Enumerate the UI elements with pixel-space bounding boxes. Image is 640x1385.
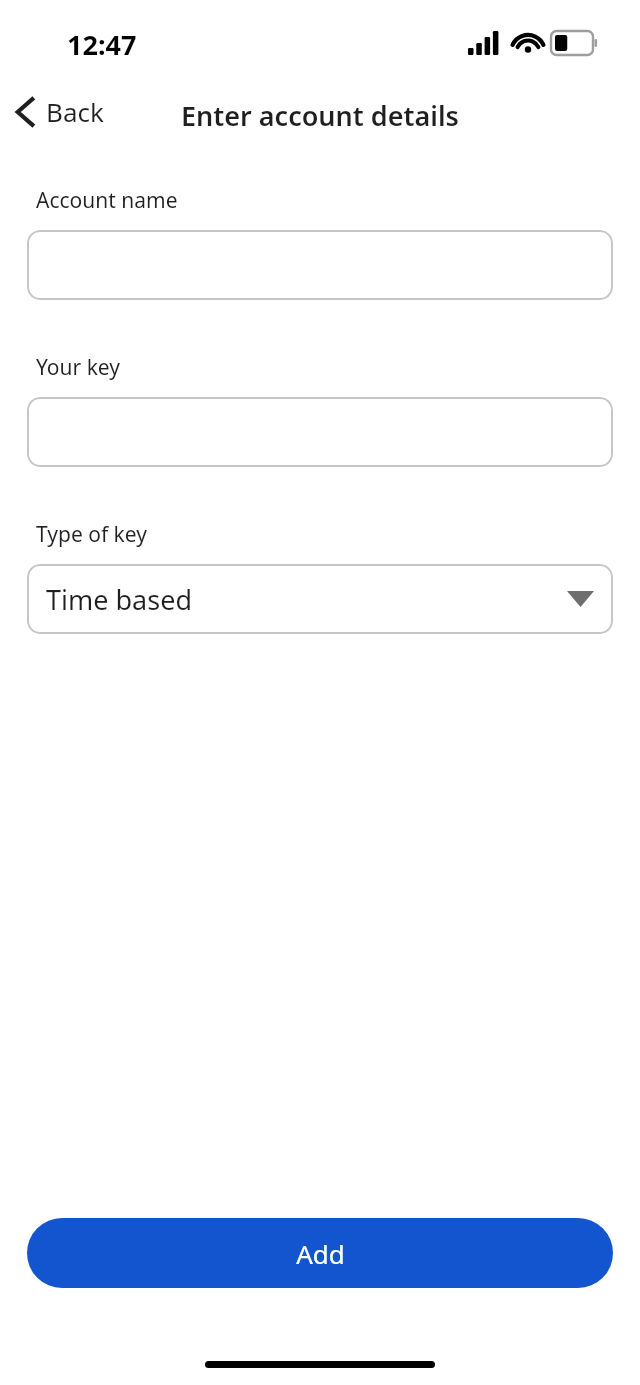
button[interactable]: Back — [6, 90, 114, 133]
button[interactable]: Time based — [27, 564, 613, 634]
staticText: Back — [46, 94, 104, 129]
staticText: 12:47 — [67, 26, 137, 63]
staticText: Your key — [36, 353, 120, 382]
button[interactable] — [27, 397, 613, 467]
staticText: Type of key — [36, 520, 147, 549]
other: Open key type menu — [567, 591, 594, 607]
staticText: Account name — [36, 186, 178, 215]
staticText: Enter account details — [181, 97, 459, 134]
button[interactable] — [27, 230, 613, 300]
staticText: Time based — [46, 581, 192, 618]
staticText: Add — [296, 1236, 345, 1271]
button[interactable]: Add — [27, 1218, 613, 1288]
